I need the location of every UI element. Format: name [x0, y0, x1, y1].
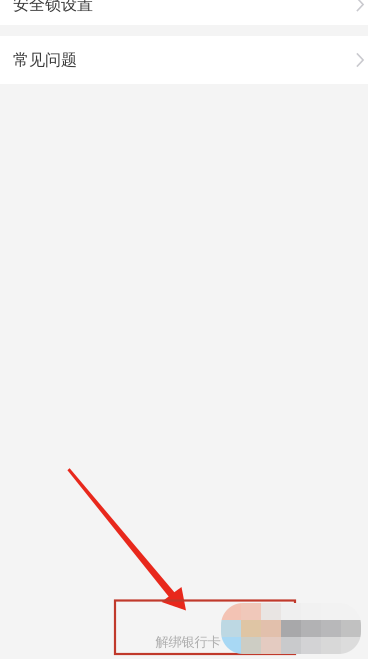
- button[interactable]: 常见问题: [0, 36, 368, 84]
- button[interactable]: 解绑银行卡: [100, 603, 276, 667]
- staticText: 安全锁设置: [13, 0, 93, 14]
- staticText: 解绑银行卡: [155, 634, 220, 650]
- staticText: 常见问题: [13, 50, 77, 70]
- button[interactable]: 安全锁设置: [0, 0, 368, 25]
